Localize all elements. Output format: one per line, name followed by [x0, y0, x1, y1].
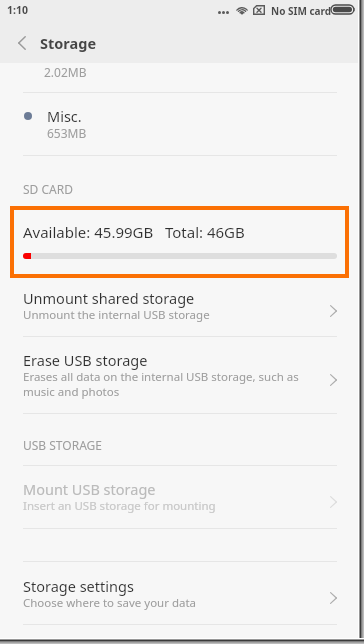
button[interactable]: Unmount shared storage: [0, 285, 359, 337]
button[interactable]: Erase USB storage: [0, 347, 359, 413]
staticText: SD CARD: [23, 181, 73, 197]
staticText: Mount USB storage: [23, 479, 156, 499]
staticText: Choose where to save your data: [23, 595, 197, 611]
staticText: Insert an USB storage for mounting: [23, 498, 216, 514]
staticText: Unmount shared storage: [23, 288, 195, 308]
staticText: Available: 45.99GB Total: 46GB: [23, 222, 245, 242]
button[interactable]: [0, 96, 359, 155]
staticText: Storage settings: [23, 576, 134, 596]
staticText: Misc.: [47, 106, 82, 126]
staticText: No SIM card: [271, 4, 332, 18]
staticText: 1:10: [7, 3, 28, 17]
staticText: Storage: [40, 33, 97, 53]
staticText: 2.02MB: [44, 64, 87, 80]
staticText: Erase USB storage: [23, 350, 148, 370]
button[interactable]: Back: [5, 22, 38, 63]
staticText: music and photos: [23, 384, 120, 400]
button[interactable]: Mount USB storage: [0, 476, 359, 527]
staticText: Unmount the internal USB storage: [23, 307, 210, 323]
staticText: 653MB: [47, 125, 87, 141]
staticText: USB STORAGE: [23, 437, 102, 453]
button[interactable]: Storage settings: [0, 573, 359, 623]
staticText: Erases all data on the internal USB stor…: [23, 369, 299, 385]
